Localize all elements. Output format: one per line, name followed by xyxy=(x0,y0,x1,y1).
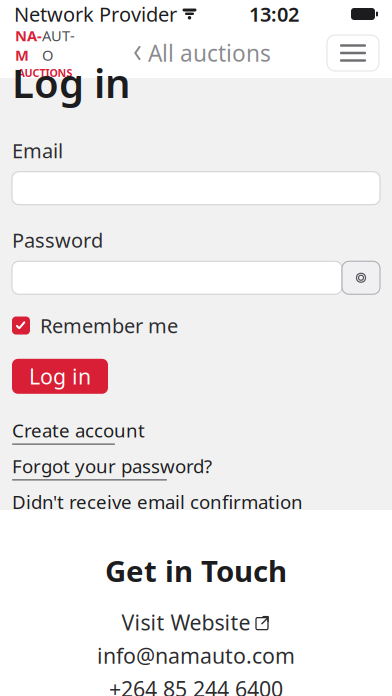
staticText: Create account xyxy=(12,418,145,443)
staticText: Didn't receive email confirmation instru… xyxy=(12,489,303,539)
staticText: Log in xyxy=(12,56,131,109)
button[interactable]: Menu xyxy=(327,35,379,71)
staticText: 13:02 xyxy=(249,1,299,27)
staticText: All auctions xyxy=(148,38,271,68)
button[interactable]: Show password xyxy=(342,261,380,294)
staticText: +264 85 244 6400 xyxy=(109,675,283,696)
button[interactable]: Log in xyxy=(12,359,108,394)
staticText: Forgot your password? xyxy=(12,454,212,478)
staticText: Remember me xyxy=(40,312,178,339)
staticText: AUTO xyxy=(42,26,75,65)
staticText: Visit Website xyxy=(121,608,250,636)
button[interactable]: Create account xyxy=(12,418,145,445)
button[interactable]: Visit Website xyxy=(121,608,270,636)
button[interactable]: All auctions xyxy=(133,38,271,68)
staticText: Password xyxy=(12,227,103,253)
staticText: AUCTIONS xyxy=(17,66,72,80)
staticText: Get in Touch xyxy=(105,551,287,590)
staticText: Network Provider xyxy=(14,1,177,27)
button[interactable]: Remember me xyxy=(12,312,178,339)
staticText: Email xyxy=(12,137,63,164)
staticText: Log in xyxy=(29,362,91,390)
button[interactable]: Didn't receive email confirmation instru… xyxy=(12,489,327,541)
button[interactable]: Forgot your password? xyxy=(12,454,212,480)
staticText: info@namauto.com xyxy=(97,641,295,670)
staticText: NAM xyxy=(15,26,42,65)
